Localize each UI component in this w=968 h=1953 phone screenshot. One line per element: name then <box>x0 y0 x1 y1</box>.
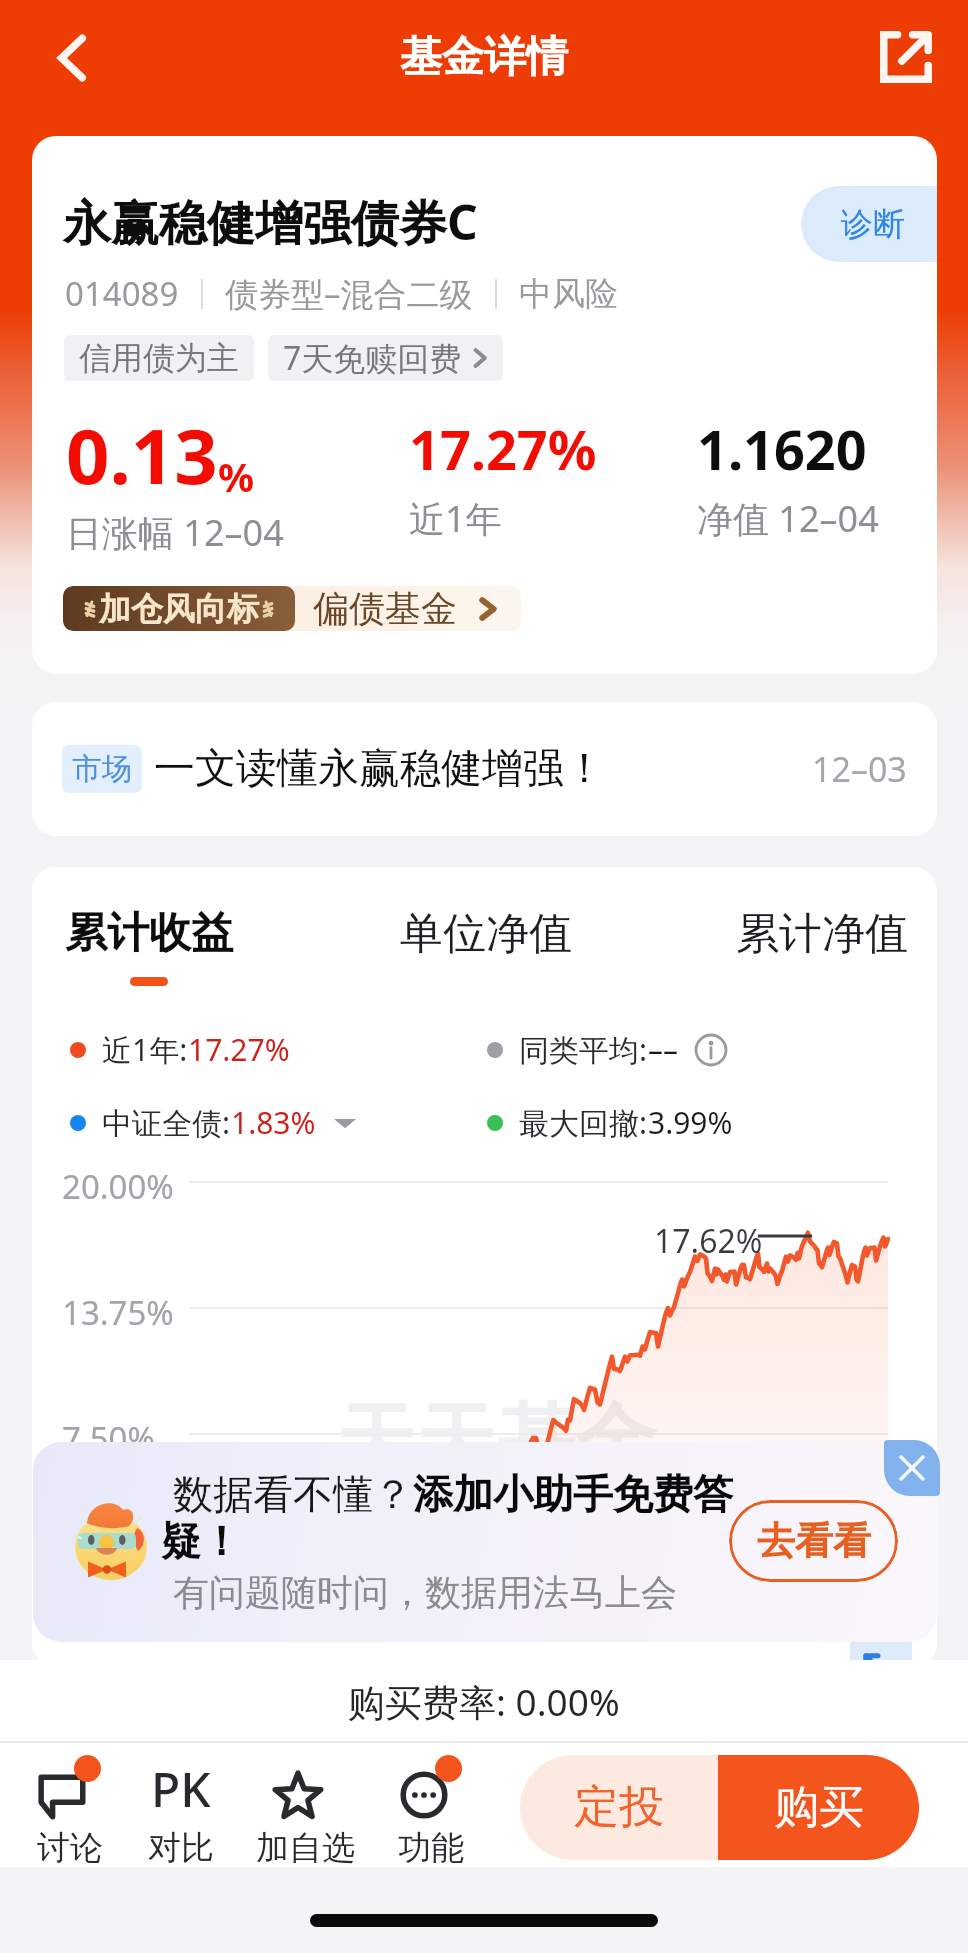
button[interactable]: Share <box>866 17 946 97</box>
staticText: 债券型–混合二级 <box>225 271 473 316</box>
button[interactable]: 购买 <box>718 1755 919 1860</box>
staticText: 014089 <box>65 271 179 316</box>
staticText: 3.99% <box>648 1102 733 1143</box>
staticText: 中证全债: <box>102 1102 231 1143</box>
staticText: 12–03 <box>812 746 907 792</box>
staticText: 17.62% <box>654 1219 763 1263</box>
button[interactable]: 信用债为主 <box>64 335 254 381</box>
button[interactable]: 功能 <box>377 1755 485 1869</box>
button[interactable]: 市场 <box>32 702 937 836</box>
button[interactable]: 累计净值 <box>736 907 908 961</box>
staticText: 功能 <box>398 1827 464 1869</box>
staticText: 诊断 <box>841 204 905 244</box>
button[interactable]: 7天免赎回费 <box>268 335 503 381</box>
button[interactable]: 加仓风向标 <box>63 586 521 631</box>
staticText: % <box>218 449 255 503</box>
staticText: 对比 <box>148 1827 214 1869</box>
staticText: 基金详情 <box>400 31 568 84</box>
staticText: 中风险 <box>519 273 618 315</box>
staticText: 17.27% <box>188 1029 290 1070</box>
button[interactable]: Back <box>34 18 114 98</box>
button[interactable]: 去看看 <box>729 1500 898 1582</box>
staticText: 有问题随时问，数据用法马上会 <box>173 1570 677 1615</box>
staticText: 市场 <box>72 750 132 788</box>
button[interactable]: PK <box>127 1755 235 1869</box>
staticText: 加自选 <box>256 1827 355 1869</box>
staticText: 17.27% <box>409 412 597 486</box>
button[interactable]: 单位净值 <box>400 907 572 961</box>
staticText: 疑！ <box>161 1516 241 1566</box>
staticText: 加仓风向标 <box>99 589 259 629</box>
button[interactable]: 讨论 <box>16 1755 124 1869</box>
staticText: 0.13 <box>66 403 218 507</box>
button[interactable]: 加自选 <box>251 1755 359 1869</box>
staticText: 近1年 <box>409 494 502 543</box>
staticText: 1.83% <box>231 1102 316 1143</box>
staticText: PK <box>151 1756 211 1821</box>
staticText: 日涨幅 12–04 <box>66 508 284 557</box>
staticText: 信用债为主 <box>79 338 239 378</box>
staticText: 20.00% <box>62 1164 174 1209</box>
staticText: 近1年: <box>102 1029 188 1070</box>
staticText: 1.1620 <box>697 412 867 486</box>
staticText: 数据看不懂？ <box>173 1469 413 1519</box>
staticText: 天天基金 <box>336 1392 656 1493</box>
staticText: –– <box>648 1029 678 1070</box>
staticText: 讨论 <box>37 1827 103 1869</box>
staticText: 添加小助手免费答 <box>413 1469 733 1519</box>
staticText: 同类平均: <box>519 1029 648 1070</box>
staticText: 偏债基金 <box>313 586 457 631</box>
staticText: 一文读懂永赢稳健增强！ <box>154 743 605 795</box>
staticText: 永赢稳健增强债券C <box>63 189 478 255</box>
button[interactable]: Close <box>884 1440 940 1496</box>
staticText: 累计净值 <box>736 907 908 961</box>
button[interactable]: 累计收益 <box>65 907 233 986</box>
staticText: 7天免赎回费 <box>283 336 462 380</box>
staticText: 单位净值 <box>400 907 572 961</box>
button[interactable]: 定投 <box>520 1755 718 1860</box>
staticText: 13.75% <box>62 1290 174 1335</box>
staticText: 7.50% <box>62 1416 155 1461</box>
button[interactable] <box>33 1442 937 1642</box>
staticText: 累计收益 <box>65 907 233 960</box>
button[interactable]: 诊断 <box>801 186 937 262</box>
staticText: 去看看 <box>757 1517 871 1565</box>
staticText: 净值 12–04 <box>697 494 879 543</box>
staticText: 最大回撤: <box>519 1102 648 1143</box>
staticText: 购买 <box>774 1779 864 1836</box>
staticText: 购买费率: 0.00% <box>348 1676 620 1727</box>
staticText: 定投 <box>574 1779 664 1836</box>
button[interactable]: Collapse <box>850 1640 912 1702</box>
